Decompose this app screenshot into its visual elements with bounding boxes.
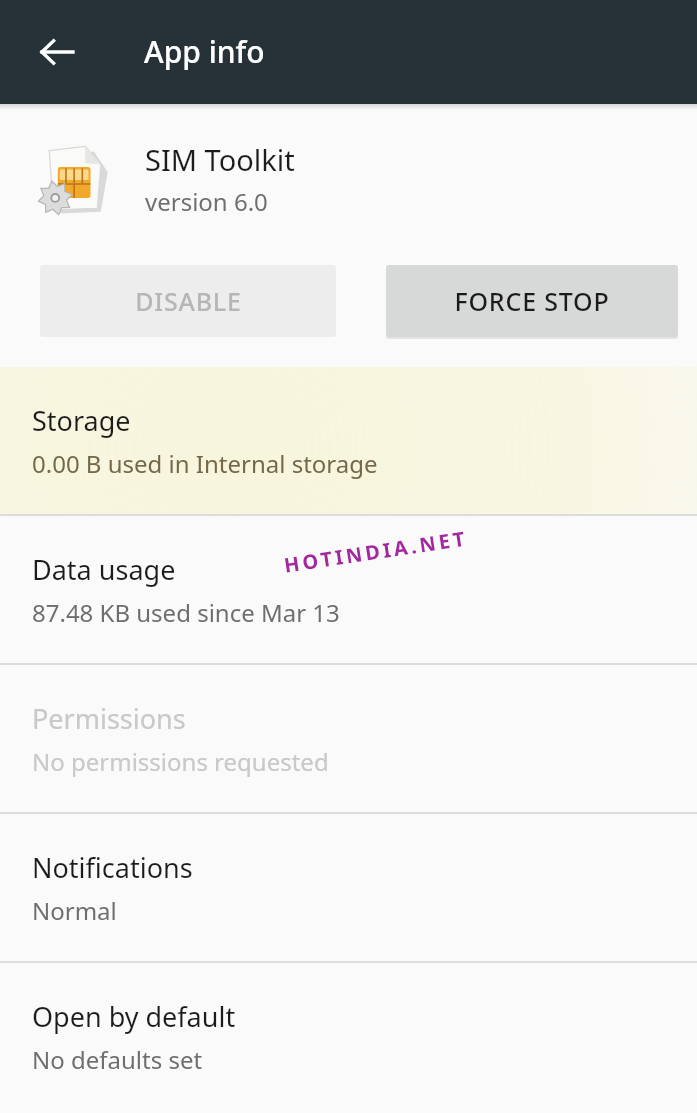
staticText: App info [144,31,265,72]
staticText: Permissions [32,700,186,737]
staticText: FORCE STOP [454,284,610,318]
button[interactable]: Permissions [0,665,697,812]
button[interactable]: Notifications [0,814,697,961]
staticText: Data usage [32,551,176,588]
button[interactable]: Open by default [0,963,697,1110]
staticText: No defaults set [32,1043,203,1076]
staticText: 0.00 B used in Internal storage [32,447,378,480]
staticText: HOTINDIA.NET [282,524,470,579]
button[interactable]: FORCE STOP [386,265,678,337]
button[interactable]: Navigate up [25,20,89,84]
staticText: Notifications [32,849,193,886]
staticText: No permissions requested [32,745,329,778]
staticText: Storage [32,402,131,439]
staticText: DISABLE [135,284,242,318]
button[interactable]: Data usage [0,516,697,663]
staticText: version 6.0 [145,185,268,218]
staticText: SIM Toolkit [145,140,295,179]
button[interactable]: DISABLE [40,265,336,337]
staticText: Normal [32,894,117,927]
button[interactable]: Storage [0,367,697,514]
staticText: Open by default [32,998,236,1035]
staticText: 87.48 KB used since Mar 13 [32,596,340,629]
